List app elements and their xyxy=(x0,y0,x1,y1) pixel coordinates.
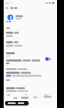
button[interactable] xyxy=(5,57,53,65)
button[interactable] xyxy=(5,6,10,10)
button[interactable] xyxy=(5,100,29,106)
button[interactable] xyxy=(5,30,53,38)
button[interactable] xyxy=(5,40,53,48)
button[interactable] xyxy=(45,56,52,61)
button[interactable] xyxy=(5,93,53,100)
button[interactable] xyxy=(5,13,50,23)
button[interactable] xyxy=(5,86,53,93)
button[interactable] xyxy=(5,67,53,78)
button[interactable] xyxy=(5,51,53,57)
